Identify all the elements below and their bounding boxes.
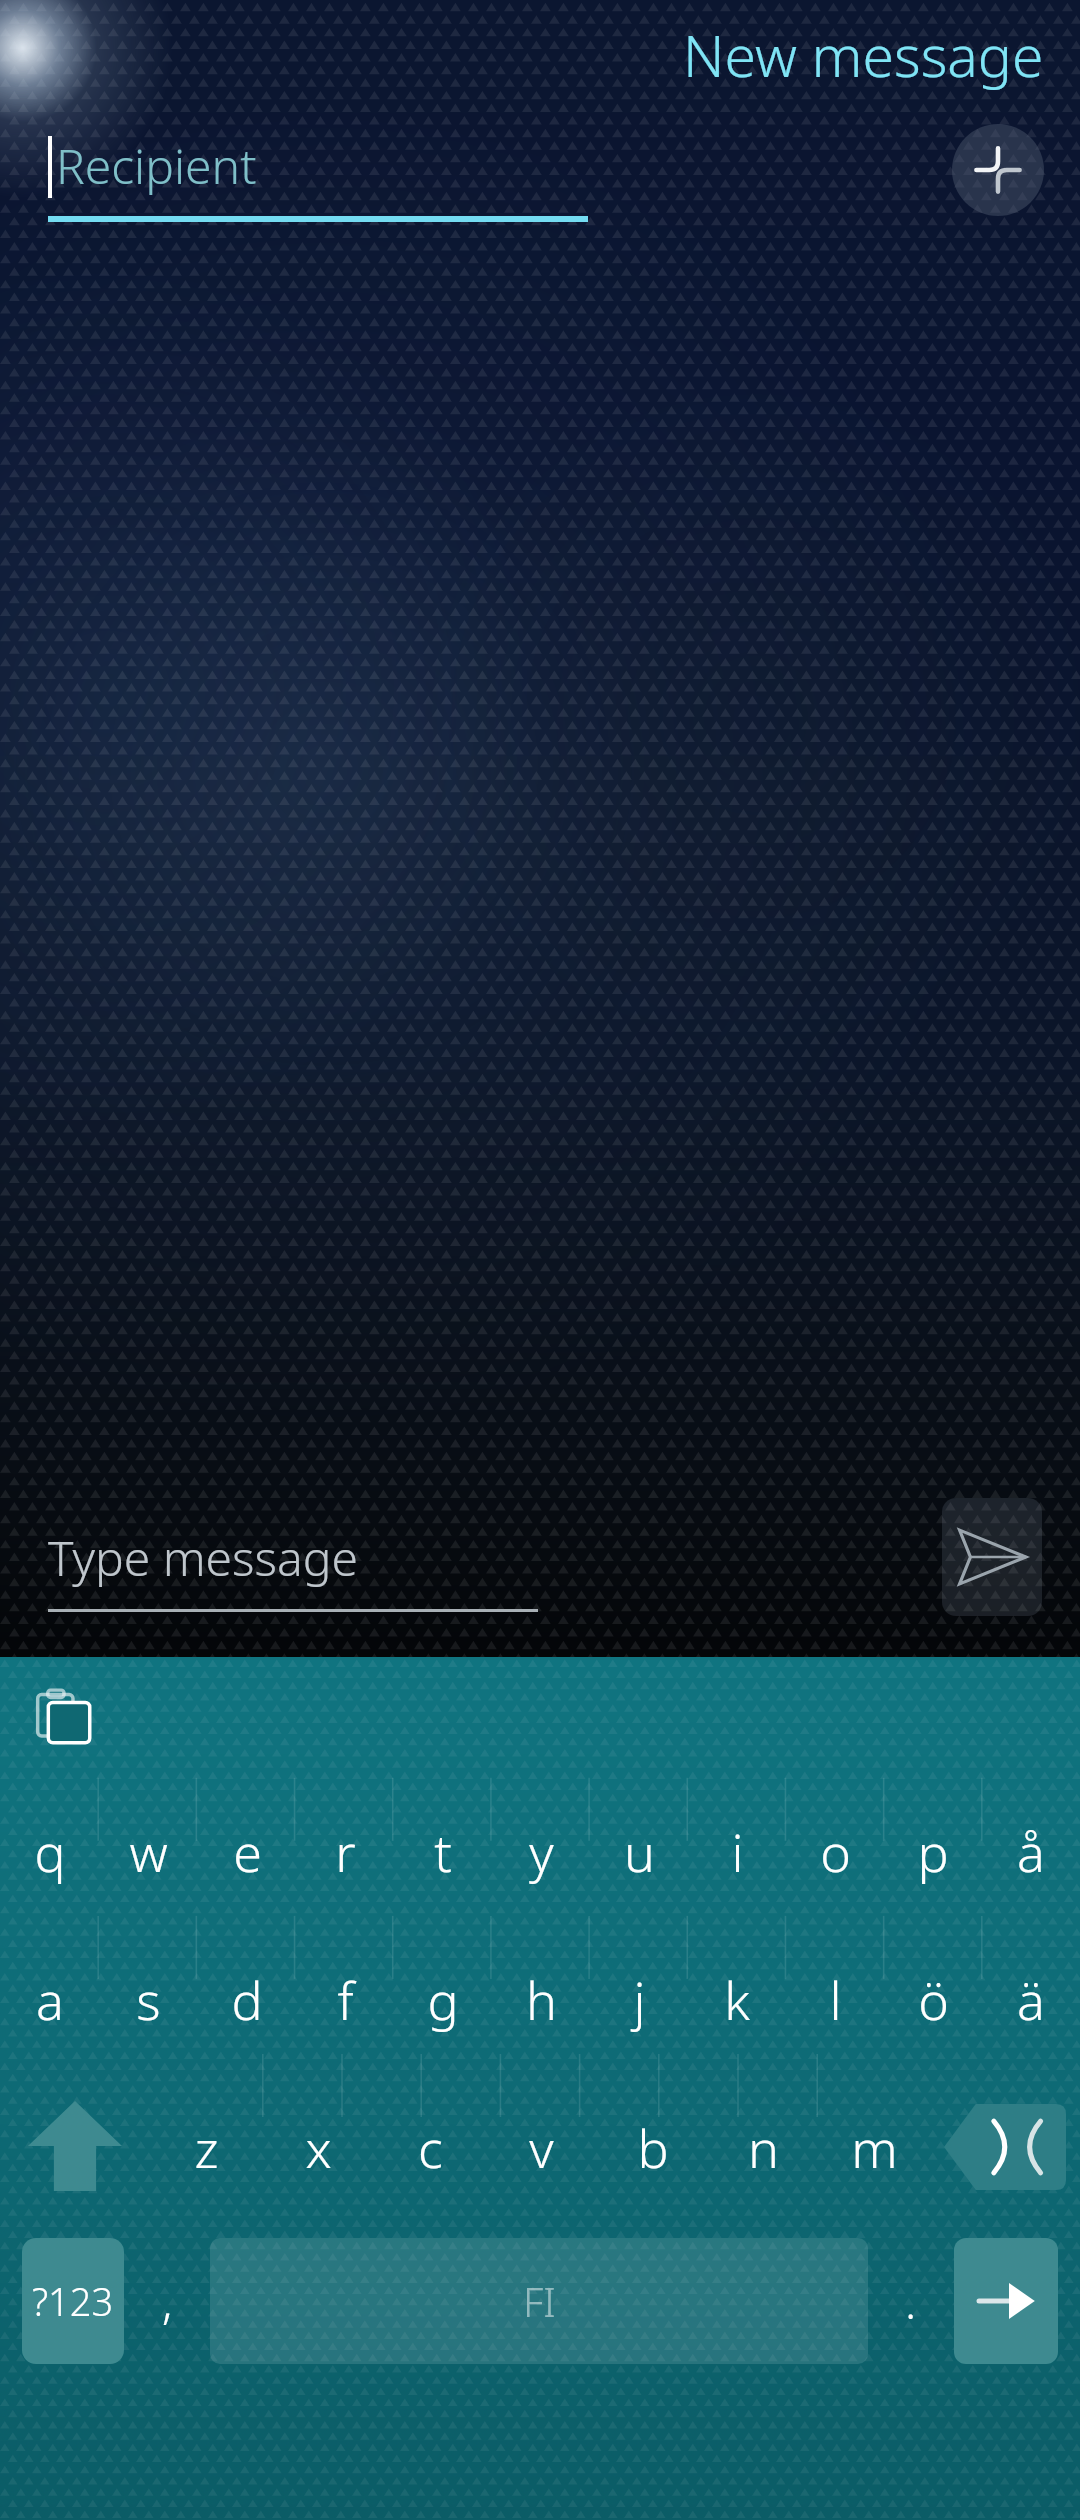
staticText: j [633, 1964, 646, 2035]
button[interactable]: Recipient [48, 118, 588, 222]
button[interactable]: o [786, 1777, 884, 1925]
staticText: x [305, 2112, 332, 2183]
staticText: y [529, 1816, 554, 1887]
button[interactable]: Add recipient [952, 124, 1044, 216]
button[interactable]: ä [982, 1925, 1080, 2073]
staticText: u [624, 1816, 655, 1887]
button[interactable]: å [982, 1777, 1080, 1925]
staticText: z [194, 2112, 219, 2183]
button[interactable]: Backspace [930, 2073, 1080, 2221]
button[interactable]: v [486, 2073, 597, 2221]
button[interactable]: r [296, 1777, 394, 1925]
button[interactable]: a [0, 1925, 99, 2073]
staticText: . [905, 2270, 917, 2333]
staticText: , [162, 2270, 173, 2333]
button[interactable]: m [819, 2073, 930, 2221]
button[interactable]: h [492, 1925, 590, 2073]
staticText: i [731, 1816, 744, 1887]
button[interactable]: w [99, 1777, 198, 1925]
button[interactable]: k [688, 1925, 786, 2073]
button[interactable]: z [150, 2073, 262, 2221]
button[interactable]: ?123 [22, 2238, 124, 2364]
staticText: f [337, 1964, 354, 2035]
button[interactable]: t [394, 1777, 492, 1925]
button[interactable]: Send [942, 1498, 1042, 1616]
button[interactable]: Shift [0, 2073, 150, 2221]
staticText: k [724, 1964, 750, 2035]
staticText: v [529, 2112, 554, 2183]
staticText: Type message [48, 1525, 358, 1590]
staticText: w [129, 1816, 168, 1887]
button[interactable]: b [597, 2073, 708, 2221]
staticText: c [418, 2112, 443, 2183]
button[interactable]: c [374, 2073, 486, 2221]
button[interactable]: . [868, 2238, 954, 2364]
button[interactable]: u [590, 1777, 688, 1925]
button[interactable]: Type message [48, 1502, 538, 1612]
staticText: p [917, 1816, 949, 1887]
button[interactable]: i [688, 1777, 786, 1925]
button[interactable]: e [198, 1777, 296, 1925]
staticText: h [526, 1964, 557, 2035]
staticText: m [851, 2112, 898, 2183]
button[interactable]: l [786, 1925, 884, 2073]
button[interactable]: Enter [954, 2238, 1058, 2364]
button[interactable]: , [124, 2238, 210, 2364]
button[interactable]: y [492, 1777, 590, 1925]
button[interactable]: q [0, 1777, 99, 1925]
staticText: d [231, 1964, 263, 2035]
staticText: ä [1017, 1964, 1045, 2035]
button[interactable]: g [394, 1925, 492, 2073]
staticText: s [136, 1964, 161, 2035]
button[interactable]: d [198, 1925, 296, 2073]
staticText: g [427, 1964, 459, 2035]
button[interactable]: x [262, 2073, 374, 2221]
staticText: o [820, 1816, 851, 1887]
button[interactable]: s [99, 1925, 198, 2073]
staticText: l [829, 1964, 842, 2035]
staticText: a [36, 1964, 64, 2035]
staticText: Recipient [56, 133, 257, 198]
button[interactable]: p [884, 1777, 982, 1925]
staticText: n [748, 2112, 779, 2183]
staticText: ?123 [32, 2275, 114, 2327]
button[interactable]: Clipboard [18, 1671, 110, 1763]
staticText: e [233, 1816, 262, 1887]
button[interactable]: ö [884, 1925, 982, 2073]
staticText: FI [523, 2274, 556, 2328]
button[interactable]: j [590, 1925, 688, 2073]
button[interactable]: f [296, 1925, 394, 2073]
staticText: b [637, 2112, 669, 2183]
staticText: q [34, 1816, 66, 1887]
staticText: t [434, 1816, 452, 1887]
button[interactable]: Space [210, 2238, 868, 2364]
staticText: ö [918, 1964, 949, 2035]
staticText: r [335, 1816, 356, 1887]
staticText: New message [683, 16, 1044, 94]
button[interactable]: n [708, 2073, 819, 2221]
staticText: å [1017, 1816, 1045, 1887]
